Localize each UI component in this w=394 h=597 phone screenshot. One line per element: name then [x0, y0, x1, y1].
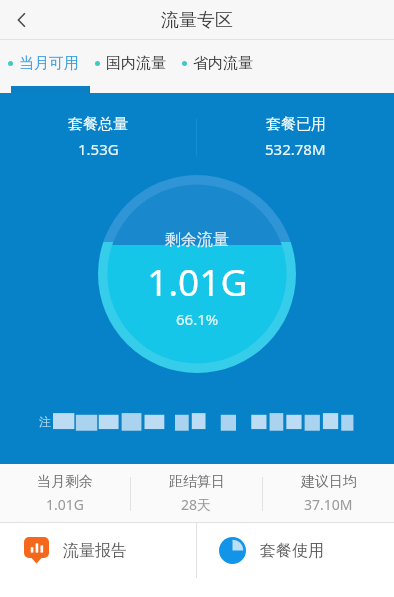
staticText: 当月剩余: [37, 473, 93, 491]
staticText: 1.53G: [78, 139, 119, 159]
staticText: 532.78M: [265, 139, 326, 159]
staticText: 流量专区: [161, 9, 233, 32]
button[interactable]: 当月可用: [0, 50, 87, 77]
staticText: 当月可用: [19, 54, 79, 73]
staticText: 剩余流量: [165, 230, 229, 250]
staticText: 距结算日: [169, 473, 225, 491]
staticText: 套餐已用: [266, 115, 326, 134]
staticText: 套餐使用: [260, 541, 324, 561]
staticText: 28天: [181, 495, 212, 514]
staticText: 37.10M: [304, 495, 353, 514]
button[interactable]: 套餐使用: [197, 523, 394, 578]
staticText: 流量报告: [63, 541, 127, 561]
button[interactable]: Back: [0, 0, 44, 40]
staticText: 套餐总量: [68, 115, 128, 134]
button[interactable]: 流量报告: [0, 523, 196, 578]
staticText: 国内流量: [106, 54, 166, 73]
button[interactable]: 省内流量: [174, 50, 261, 77]
staticText: 省内流量: [193, 54, 253, 73]
staticText: 1.01G: [147, 256, 248, 306]
staticText: 1.01G: [46, 495, 84, 514]
staticText: 注: [39, 414, 51, 429]
button[interactable]: 国内流量: [87, 50, 174, 77]
staticText: 66.1%: [176, 309, 219, 329]
staticText: 建议日均: [301, 473, 357, 491]
